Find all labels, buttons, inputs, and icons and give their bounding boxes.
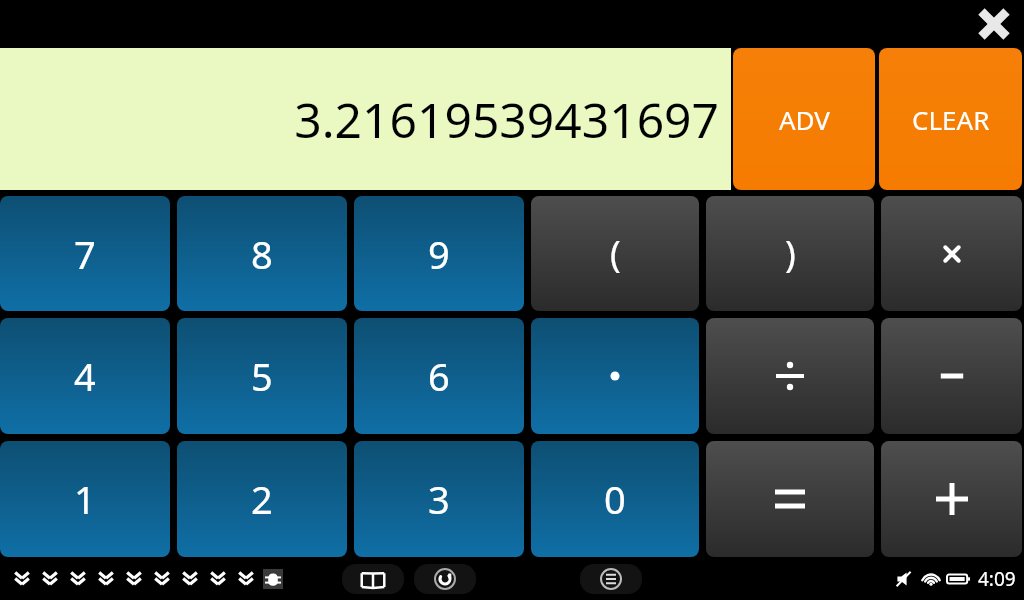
button[interactable]: 5 xyxy=(177,318,347,434)
button[interactable]: Collapse xyxy=(232,565,260,593)
staticText: 2 xyxy=(251,473,273,525)
staticText: CLEAR xyxy=(912,102,990,137)
staticText: 4:09 xyxy=(978,566,1016,592)
staticText: 3.21619539431697 xyxy=(294,87,719,152)
staticText: 9 xyxy=(428,228,450,280)
button[interactable]: Back xyxy=(414,564,476,594)
staticText: 6 xyxy=(428,350,450,402)
staticText: 1 xyxy=(74,473,96,525)
button[interactable]: Equals xyxy=(706,441,874,557)
staticText: ADV xyxy=(779,102,830,137)
staticText: 7 xyxy=(74,228,96,280)
button[interactable]: Plus xyxy=(881,441,1022,557)
button[interactable]: 1 xyxy=(0,441,170,557)
button[interactable]: Collapse xyxy=(176,565,204,593)
button[interactable]: Collapse xyxy=(92,565,120,593)
button[interactable]: Minus xyxy=(881,318,1022,434)
button[interactable]: Collapse xyxy=(148,565,176,593)
button[interactable]: 9 xyxy=(354,196,524,311)
button[interactable]: Collapse xyxy=(64,565,92,593)
button[interactable]: 2 xyxy=(177,441,347,557)
staticText: 8 xyxy=(251,228,273,280)
button[interactable]: Collapse xyxy=(8,565,36,593)
button[interactable]: ADV xyxy=(733,48,875,190)
staticText: 0 xyxy=(604,473,626,525)
staticText: 4 xyxy=(74,350,96,402)
button[interactable]: 3 xyxy=(354,441,524,557)
button[interactable]: Divide xyxy=(706,318,874,434)
button[interactable]: 7 xyxy=(0,196,170,311)
button[interactable]: 3.21619539431697 xyxy=(0,48,731,190)
button[interactable]: 8 xyxy=(177,196,347,311)
button[interactable]: ) xyxy=(706,196,874,311)
button[interactable]: Debug xyxy=(260,566,286,592)
button[interactable]: Home xyxy=(342,564,404,594)
button[interactable]: 6 xyxy=(354,318,524,434)
staticText: 5 xyxy=(251,350,273,402)
staticText: 3 xyxy=(428,473,450,525)
button[interactable]: 0 xyxy=(531,441,699,557)
button[interactable]: Menu xyxy=(580,564,642,594)
staticText: ) xyxy=(785,229,796,278)
staticText: ( xyxy=(610,229,621,278)
button[interactable]: Decimal point xyxy=(531,318,699,434)
button[interactable]: Collapse xyxy=(204,565,232,593)
button[interactable]: CLEAR xyxy=(879,48,1022,190)
button[interactable]: ( xyxy=(531,196,699,311)
button[interactable]: Collapse xyxy=(36,565,64,593)
button[interactable]: Multiply xyxy=(881,196,1022,311)
button[interactable]: 4 xyxy=(0,318,170,434)
button[interactable]: Close xyxy=(976,6,1012,42)
button[interactable]: Collapse xyxy=(120,565,148,593)
